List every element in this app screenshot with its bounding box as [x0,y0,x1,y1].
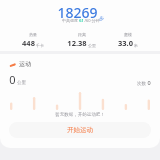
staticText: 次数 [136,80,147,86]
staticText: 61 [79,18,84,23]
button[interactable]: 18269 [0,0,160,51]
staticText: /60 分钟 [84,18,100,23]
staticText: 33.0 [118,38,133,48]
staticText: 公里 [88,43,96,48]
staticText: 热量 [29,32,37,37]
button[interactable]: 爬楼 [118,32,138,48]
staticText: 18269 [57,3,98,22]
staticText: 运动 [19,60,31,68]
staticText: 0 [9,72,16,87]
staticText: 448 [22,38,35,48]
button[interactable]: 距离 [67,32,96,48]
staticText: 米 [134,43,138,48]
button[interactable]: 开始运动 [9,122,151,138]
staticText: 爬楼 [124,32,132,37]
staticText: 暂无数据，开始运动吧！ [55,112,105,118]
other: Workout [9,61,16,68]
staticText: 公里 [17,80,26,86]
staticText: 0 [147,79,151,86]
staticText: 距离 [78,32,86,37]
staticText: 千卡 [36,43,44,48]
button[interactable]: Workout [9,60,160,68]
staticText: 12.38 [67,38,87,48]
staticText: 步 [99,15,104,21]
button[interactable]: 热量 [22,32,44,48]
staticText: 中高强度 [61,18,79,23]
staticText: 开始运动 [67,126,93,134]
